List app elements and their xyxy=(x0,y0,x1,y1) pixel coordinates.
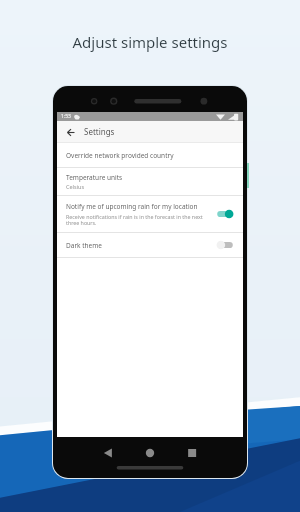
button[interactable]: Dark theme xyxy=(57,233,243,257)
button[interactable]: Toggle off xyxy=(215,239,235,251)
staticText: Adjust simple settings xyxy=(0,32,300,52)
staticText: 1:53 xyxy=(61,113,71,120)
staticText: Settings xyxy=(84,126,115,137)
button[interactable]: Temperature units xyxy=(57,168,243,195)
button[interactable]: Back xyxy=(63,125,77,139)
button[interactable]: Override network provided country xyxy=(57,143,243,167)
staticText: Celsius xyxy=(66,183,85,190)
button[interactable]: Notify me of upcoming rain for my locati… xyxy=(57,196,243,232)
button[interactable]: Toggle on xyxy=(215,208,235,220)
staticText: Override network provided country xyxy=(66,151,174,160)
staticText: Receive notifications if rain is in the … xyxy=(66,213,209,227)
staticText: Temperature units xyxy=(66,173,123,182)
staticText: Dark theme xyxy=(66,241,103,250)
staticText: Notify me of upcoming rain for my locati… xyxy=(66,202,198,211)
